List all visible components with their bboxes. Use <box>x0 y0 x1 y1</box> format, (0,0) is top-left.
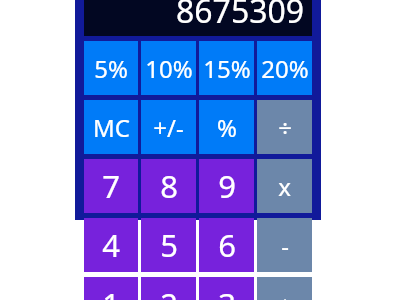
button[interactable]: 20% <box>257 41 312 95</box>
staticText: 15% <box>203 52 251 85</box>
staticText: - <box>281 229 289 262</box>
staticText: x <box>278 170 291 203</box>
staticText: 5% <box>94 52 128 85</box>
staticText: + <box>278 288 292 300</box>
button[interactable]: 5 <box>141 218 196 272</box>
staticText: 10% <box>145 52 193 85</box>
staticText: 7 <box>102 165 120 207</box>
staticText: 5 <box>160 224 178 266</box>
staticText: 1 <box>102 283 120 300</box>
staticText: 8675309 <box>176 0 305 33</box>
staticText: MC <box>93 111 130 144</box>
staticText: 4 <box>102 224 120 266</box>
button[interactable]: ÷ <box>257 100 312 154</box>
button[interactable]: MC <box>84 100 138 154</box>
staticText: % <box>217 111 237 144</box>
button[interactable]: + <box>257 277 312 300</box>
button[interactable]: 3 <box>199 277 254 300</box>
button[interactable]: 2 <box>141 277 196 300</box>
button[interactable]: - <box>257 218 312 272</box>
button[interactable]: +/- <box>141 100 196 154</box>
button[interactable]: 15% <box>199 41 254 95</box>
staticText: 8 <box>160 165 178 207</box>
button[interactable]: 4 <box>84 218 138 272</box>
button[interactable]: 7 <box>84 159 138 213</box>
button[interactable]: 5% <box>84 41 138 95</box>
button[interactable]: 1 <box>84 277 138 300</box>
button[interactable]: 9 <box>199 159 254 213</box>
staticText: 3 <box>218 283 236 300</box>
staticText: 9 <box>218 165 236 207</box>
button[interactable]: 8 <box>141 159 196 213</box>
button[interactable]: 10% <box>141 41 196 95</box>
staticText: ÷ <box>278 111 292 144</box>
staticText: 20% <box>261 52 309 85</box>
staticText: 2 <box>160 283 178 300</box>
staticText: +/- <box>153 111 184 144</box>
button[interactable]: 6 <box>199 218 254 272</box>
staticText: 6 <box>218 224 236 266</box>
button[interactable]: x <box>257 159 312 213</box>
button[interactable]: % <box>199 100 254 154</box>
